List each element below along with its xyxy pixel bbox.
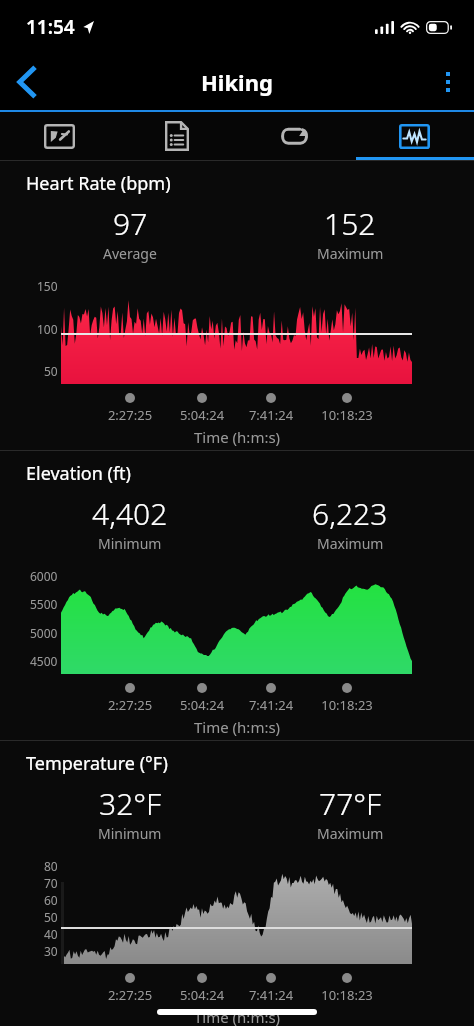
staticText: 2:27:25	[96, 696, 164, 714]
staticText: 5:04:24	[168, 696, 236, 714]
staticText: Maximum	[317, 244, 384, 263]
staticText: 4,402	[92, 493, 168, 534]
staticText: 5000	[30, 625, 58, 641]
staticText: Time (h:m:s)	[194, 427, 281, 447]
staticText: 11:54	[26, 14, 75, 40]
staticText: 7:41:24	[237, 696, 305, 714]
staticText: 40	[44, 926, 58, 942]
staticText: 30	[44, 943, 58, 959]
button[interactable]: More options	[422, 56, 474, 108]
button[interactable]: Charts	[355, 112, 474, 160]
staticText: 2:27:25	[96, 406, 164, 424]
staticText: 50	[44, 363, 58, 379]
staticText: 150	[37, 278, 58, 294]
staticText: 10:18:23	[313, 696, 381, 714]
staticText: 100	[37, 321, 58, 337]
staticText: Temperature (°F)	[26, 751, 168, 776]
button[interactable]: Laps	[236, 112, 355, 160]
staticText: Maximum	[317, 824, 384, 843]
button[interactable]: Details	[118, 112, 236, 160]
staticText: Maximum	[317, 534, 384, 553]
staticText: 97	[113, 203, 148, 244]
staticText: 6000	[30, 568, 58, 584]
staticText: Minimum	[98, 824, 162, 843]
staticText: 70	[44, 875, 58, 891]
staticText: 152	[324, 203, 376, 244]
button[interactable]: Back	[0, 56, 52, 108]
staticText: Elevation (ft)	[26, 461, 132, 486]
staticText: 2:27:25	[96, 986, 164, 1004]
staticText: 80	[44, 858, 58, 874]
staticText: Time (h:m:s)	[194, 717, 281, 737]
staticText: 5500	[30, 596, 58, 612]
staticText: Average	[103, 244, 157, 263]
staticText: 7:41:24	[237, 986, 305, 1004]
staticText: Minimum	[98, 534, 162, 553]
staticText: 60	[44, 892, 58, 908]
staticText: 4500	[30, 653, 58, 669]
staticText: Time (h:m:s)	[194, 1007, 281, 1026]
staticText: 50	[44, 909, 58, 925]
staticText: Heart Rate (bpm)	[26, 171, 171, 196]
staticText: 6,223	[312, 493, 388, 534]
button[interactable]: Map	[0, 112, 118, 160]
staticText: 77°F	[319, 783, 382, 824]
staticText: 10:18:23	[313, 986, 381, 1004]
staticText: 5:04:24	[168, 986, 236, 1004]
staticText: 5:04:24	[168, 406, 236, 424]
staticText: 32°F	[99, 783, 162, 824]
button[interactable]: Temperature (°F)	[0, 741, 474, 1026]
staticText: Hiking	[201, 67, 273, 97]
staticText: 10:18:23	[313, 406, 381, 424]
staticText: 7:41:24	[237, 406, 305, 424]
button[interactable]: Heart Rate (bpm)	[0, 161, 474, 450]
button[interactable]: Elevation (ft)	[0, 451, 474, 740]
